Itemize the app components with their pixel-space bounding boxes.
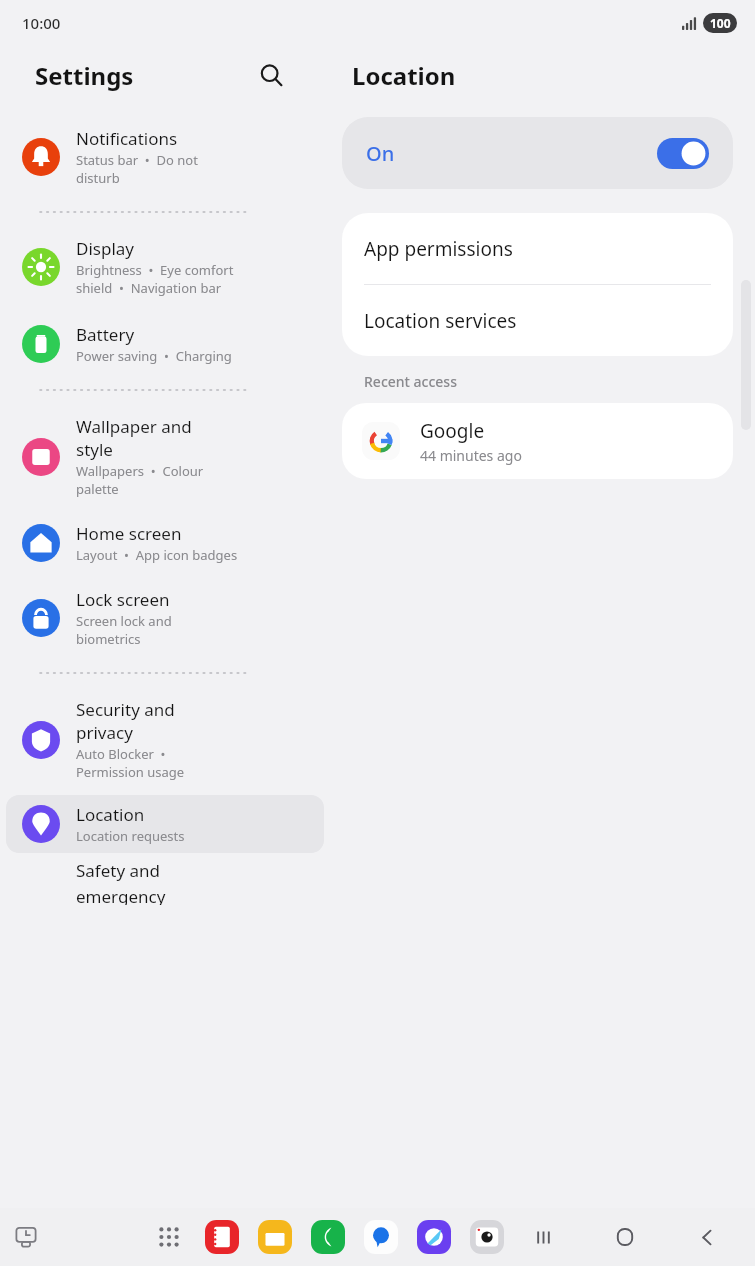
staticText: Home screen (76, 522, 182, 545)
button[interactable]: Screen time (6, 1217, 46, 1257)
button[interactable]: Phone (311, 1220, 345, 1254)
staticText: Location requests (76, 827, 185, 845)
staticText: Display (76, 237, 134, 260)
button[interactable]: Location services (342, 285, 733, 356)
staticText: Google (420, 418, 485, 444)
staticText: 10:00 (22, 13, 61, 33)
staticText: Status bar • Do not disturb (76, 151, 198, 187)
button[interactable]: My Files (258, 1220, 292, 1254)
button[interactable]: Search (248, 52, 294, 98)
staticText: App permissions (364, 236, 513, 262)
button[interactable]: Home screen (6, 514, 324, 572)
button[interactable]: Location (6, 795, 324, 853)
staticText: Location (76, 803, 145, 826)
button[interactable]: Notifications (6, 119, 324, 195)
staticText: Screen lock and biometrics (76, 612, 172, 648)
staticText: Recent access (364, 372, 457, 391)
button[interactable]: Security and privacy (6, 690, 324, 789)
staticText: 44 minutes ago (420, 446, 522, 465)
button[interactable]: All apps (152, 1220, 186, 1254)
button[interactable]: Internet (417, 1220, 451, 1254)
staticText: Battery (76, 323, 135, 346)
button[interactable]: Back (685, 1215, 729, 1259)
button[interactable]: On (342, 117, 733, 189)
staticText: Auto Blocker • Permission usage (76, 745, 185, 781)
staticText: On (366, 140, 395, 167)
staticText: Security and privacy (76, 698, 175, 744)
button[interactable]: Google (342, 403, 733, 479)
button[interactable]: Messages (364, 1220, 398, 1254)
staticText: Location (352, 59, 456, 92)
staticText: Wallpapers • Colour palette (76, 462, 204, 498)
button[interactable]: Wallpaper and style (6, 407, 324, 506)
button[interactable]: Battery (6, 315, 324, 373)
staticText: 100 (710, 15, 731, 31)
staticText: Layout • App icon badges (76, 546, 238, 564)
button[interactable]: Lock screen (6, 580, 324, 656)
staticText: Brightness • Eye comfort shield • Naviga… (76, 261, 234, 297)
staticText: Location services (364, 308, 517, 334)
button[interactable]: Home (603, 1215, 647, 1259)
button[interactable]: Recents (521, 1215, 565, 1259)
button[interactable]: App permissions (342, 213, 733, 284)
staticText: Lock screen (76, 588, 170, 611)
button[interactable]: Display (6, 229, 324, 305)
button[interactable]: Notes (205, 1220, 239, 1254)
staticText: Notifications (76, 127, 178, 150)
staticText: Wallpaper and style (76, 415, 192, 461)
staticText: Safety and emergency (76, 859, 166, 905)
staticText: Settings (35, 59, 134, 92)
staticText: Power saving • Charging (76, 347, 232, 365)
button[interactable]: Camera (470, 1220, 504, 1254)
button[interactable]: Safety and emergency (22, 859, 330, 905)
